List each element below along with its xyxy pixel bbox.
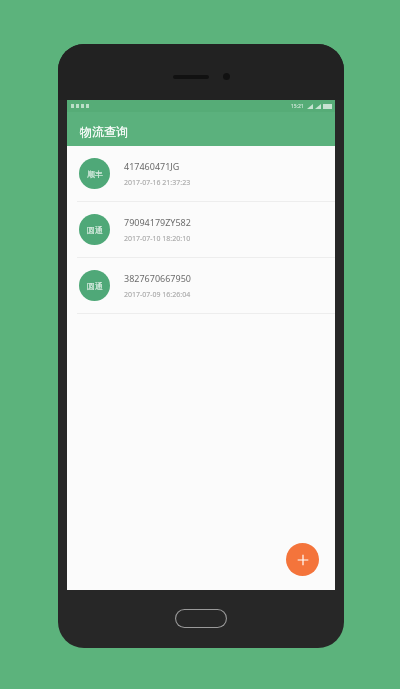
button[interactable]: Home <box>175 609 227 628</box>
staticText: 顺丰 <box>87 169 103 179</box>
staticText: 3827670667950 <box>124 272 191 284</box>
staticText: 2017-07-10 18:20:10 <box>124 234 191 244</box>
staticText: 圆通 <box>87 281 103 291</box>
button[interactable]: 圆通 <box>67 258 335 313</box>
staticText: 物流查询 <box>80 124 128 139</box>
button[interactable]: 顺丰 <box>67 146 335 201</box>
button[interactable]: Add <box>286 543 319 576</box>
staticText: 417460471JG <box>124 160 180 172</box>
button[interactable]: 圆通 <box>67 202 335 257</box>
staticText: 2017-07-09 16:26:04 <box>124 290 191 300</box>
staticText: 79094179ZY582 <box>124 216 191 228</box>
staticText: 圆通 <box>87 225 103 235</box>
staticText: 15:21 <box>291 103 304 110</box>
staticText: 2017-07-16 21:37:23 <box>124 178 191 188</box>
